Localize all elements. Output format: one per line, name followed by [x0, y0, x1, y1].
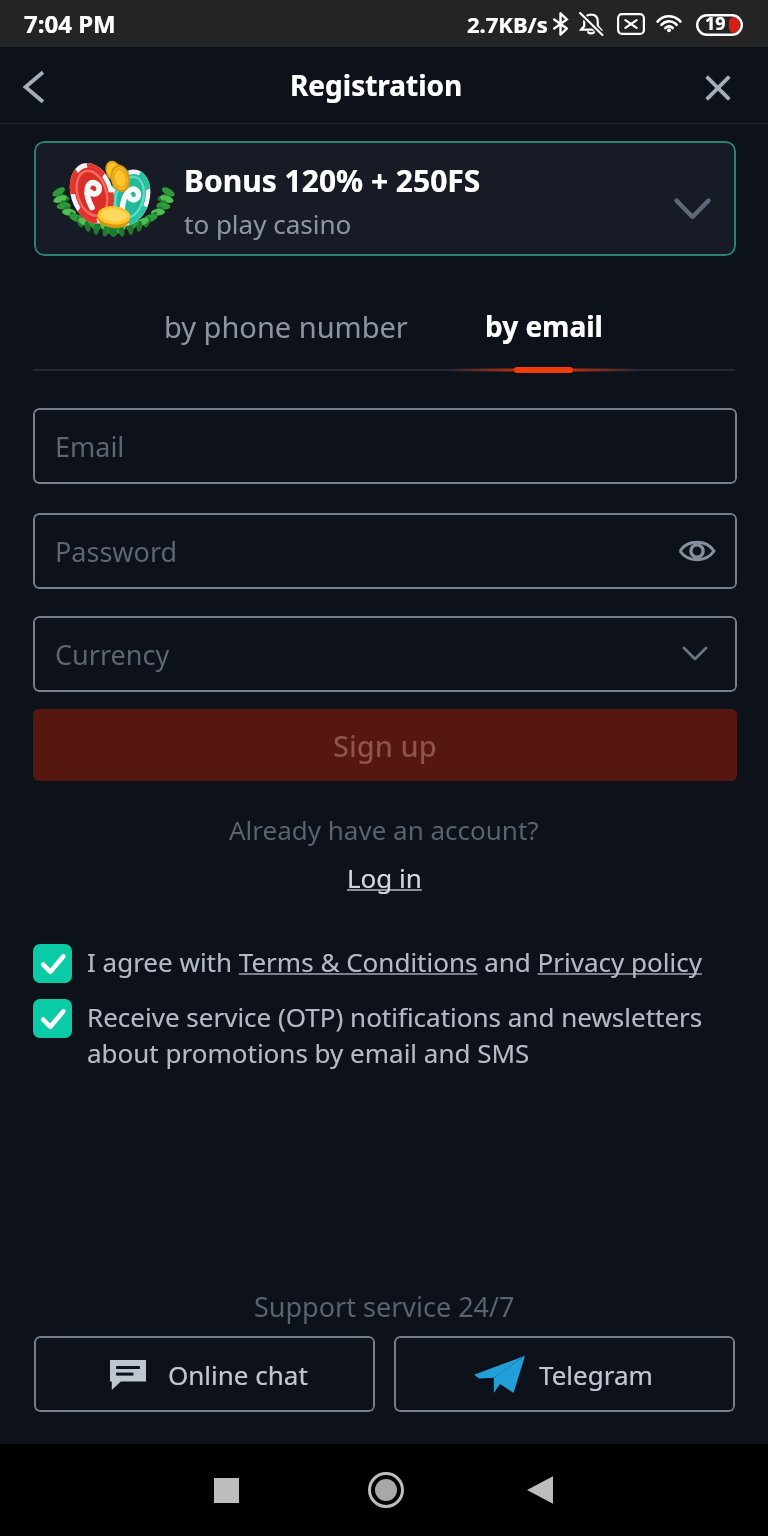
button[interactable]: Select currency	[673, 632, 717, 676]
button[interactable]: Email	[33, 408, 737, 484]
staticText: Telegram	[539, 1357, 653, 1392]
staticText: Bonus 120% + 250FS	[184, 160, 481, 201]
staticText: Registration	[290, 66, 463, 104]
button[interactable]: Close	[689, 59, 747, 117]
staticText: by email	[485, 307, 603, 345]
button[interactable]: Back	[504, 1454, 576, 1526]
button[interactable]: Recent apps	[190, 1454, 262, 1526]
button[interactable]: Back	[4, 56, 62, 114]
staticText: by phone number	[164, 307, 408, 346]
staticText: Log in	[347, 860, 422, 895]
button[interactable]: Expand bonus	[665, 182, 719, 236]
staticText: Already have an account?	[229, 812, 539, 847]
button[interactable]: Receive service (OTP) notifications and …	[33, 999, 735, 1071]
button[interactable]: Log in	[347, 860, 422, 895]
button[interactable]: Bonus 120% + 250FS	[34, 141, 736, 256]
button[interactable]: Currency	[33, 616, 737, 692]
staticText: Currency	[55, 636, 170, 673]
staticText: 19	[705, 11, 726, 36]
staticText: 7:04 PM	[24, 7, 116, 40]
staticText: 2.7KB/s	[467, 9, 548, 39]
button[interactable]: Home	[350, 1454, 422, 1526]
button[interactable]: Telegram	[394, 1336, 735, 1412]
button[interactable]: I agree with Terms & Conditions and Priv…	[33, 944, 733, 983]
button[interactable]: Online chat	[34, 1336, 375, 1412]
staticText: Support service 24/7	[254, 1288, 515, 1325]
staticText: Online chat	[168, 1357, 308, 1392]
staticText: to play casino	[184, 206, 352, 241]
staticText: I agree with Terms & Conditions and Priv…	[87, 944, 702, 979]
button[interactable]: by phone number	[110, 295, 462, 357]
staticText: Password	[55, 533, 178, 570]
staticText: Sign up	[333, 726, 437, 765]
button[interactable]: Show password	[675, 529, 719, 573]
button[interactable]: by email	[368, 295, 720, 357]
button[interactable]: Password	[33, 513, 737, 589]
staticText: Receive service (OTP) notifications and …	[87, 999, 735, 1071]
staticText: Email	[55, 428, 125, 465]
button[interactable]: Sign up	[33, 709, 737, 781]
